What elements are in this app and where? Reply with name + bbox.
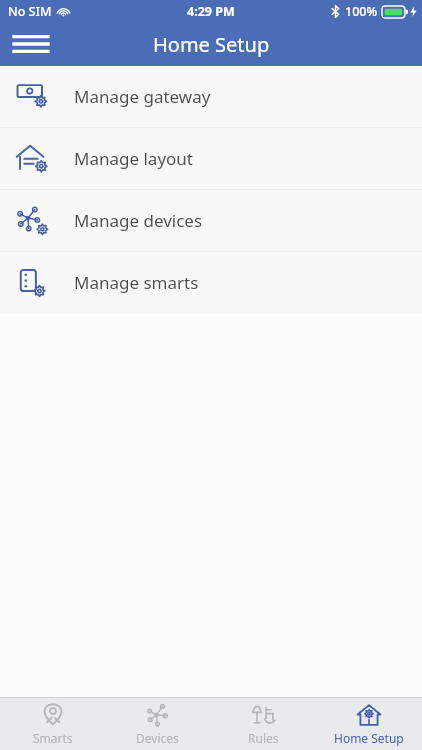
button[interactable]: Smarts	[0, 698, 105, 750]
button[interactable]: Manage layout	[0, 128, 422, 189]
staticText: Manage devices	[74, 209, 203, 232]
button[interactable]: Open navigation menu	[10, 23, 52, 65]
staticText: Devices	[136, 730, 179, 746]
button[interactable]: Rules	[210, 698, 316, 750]
button[interactable]: Manage devices	[0, 190, 422, 251]
staticText: Rules	[248, 730, 279, 746]
staticText: Home Setup	[153, 31, 270, 58]
button[interactable]: Home Setup	[316, 698, 422, 750]
staticText: 4:29 PM	[187, 3, 235, 20]
button[interactable]: Manage smarts	[0, 252, 422, 313]
button[interactable]: Devices	[105, 698, 210, 750]
button[interactable]: Manage gateway	[0, 66, 422, 127]
staticText: Manage gateway	[74, 85, 211, 108]
staticText: No SIM	[8, 3, 52, 20]
staticText: 100%	[345, 3, 378, 20]
staticText: Home Setup	[334, 730, 404, 746]
staticText: Manage smarts	[74, 271, 199, 294]
staticText: Manage layout	[74, 147, 193, 170]
staticText: Smarts	[33, 730, 73, 746]
